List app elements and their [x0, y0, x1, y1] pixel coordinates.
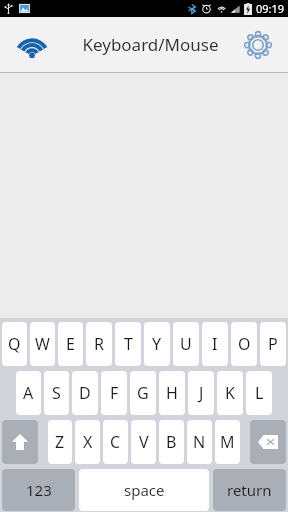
staticText: U [180, 333, 192, 355]
button[interactable]: Y [144, 322, 170, 366]
staticText: J [199, 382, 204, 404]
staticText: E [66, 333, 75, 355]
staticText: I [212, 333, 218, 355]
staticText: return [227, 480, 272, 500]
button[interactable]: W [30, 322, 55, 366]
staticText: R [94, 333, 104, 355]
staticText: V [139, 431, 149, 453]
staticText: M [220, 431, 235, 453]
staticText: N [193, 431, 206, 453]
button[interactable]: H [159, 371, 185, 415]
staticText: O [238, 333, 251, 355]
button[interactable]: Z [48, 420, 72, 464]
staticText: L [255, 382, 264, 404]
button[interactable]: B [159, 420, 184, 464]
button[interactable]: I [202, 322, 228, 366]
staticText: 09:19 [256, 1, 285, 16]
button[interactable]: X [75, 420, 100, 464]
button[interactable]: V [131, 420, 156, 464]
button[interactable]: C [103, 420, 128, 464]
staticText: K [225, 382, 235, 404]
button[interactable]: N [187, 420, 212, 464]
staticText: H [166, 382, 178, 404]
button[interactable]: D [72, 371, 98, 415]
button[interactable]: A [16, 371, 41, 415]
button[interactable]: K [217, 371, 243, 415]
button[interactable]: J [188, 371, 214, 415]
button[interactable]: R [86, 322, 112, 366]
button[interactable]: return [213, 469, 286, 511]
staticText: C [110, 431, 121, 453]
staticText: Keyboard/Mouse [82, 33, 219, 56]
button[interactable]: Backspace [250, 420, 286, 464]
button[interactable]: Q [2, 322, 27, 366]
staticText: Y [152, 333, 162, 355]
button[interactable]: S [44, 371, 69, 415]
button[interactable]: Shift [2, 420, 38, 464]
staticText: P [268, 333, 278, 355]
button[interactable]: U [173, 322, 199, 366]
staticText: A [23, 382, 34, 404]
button[interactable]: T [115, 322, 141, 366]
staticText: T [124, 333, 133, 355]
button[interactable]: E [58, 322, 83, 366]
staticText: Q [8, 333, 21, 355]
staticText: W [35, 333, 50, 355]
button[interactable]: M [215, 420, 240, 464]
button[interactable]: G [130, 371, 156, 415]
staticText: F [110, 382, 119, 404]
staticText: 123 [26, 480, 52, 500]
staticText: X [83, 431, 93, 453]
staticText: S [52, 382, 61, 404]
button[interactable]: F [101, 371, 127, 415]
staticText: D [79, 382, 91, 404]
button[interactable]: space [79, 469, 209, 511]
button[interactable]: O [231, 322, 257, 366]
staticText: space [124, 480, 165, 500]
staticText: B [166, 431, 177, 453]
button[interactable]: Connection status [12, 25, 52, 65]
staticText: Z [55, 431, 65, 453]
button[interactable]: 123 [2, 469, 75, 511]
button[interactable]: L [246, 371, 272, 415]
button[interactable]: P [260, 322, 286, 366]
staticText: G [137, 382, 149, 404]
button[interactable]: Settings [238, 25, 278, 65]
